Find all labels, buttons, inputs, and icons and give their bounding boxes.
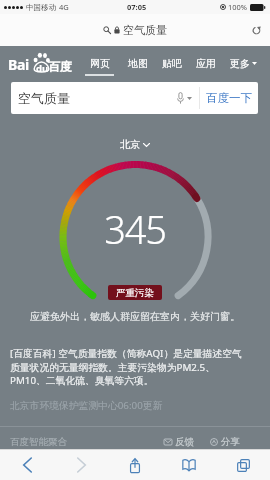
staticText: 中国移动 <box>26 3 56 12</box>
staticText: 百度 <box>48 59 72 74</box>
staticText: 百度一下 <box>206 91 252 105</box>
staticText: 反馈 <box>175 436 194 448</box>
staticText: 应用 <box>196 57 216 70</box>
staticText: 地图 <box>128 57 148 70</box>
staticText: Bai <box>8 55 29 74</box>
button[interactable]: Voice search <box>177 92 192 104</box>
button[interactable]: Baidu <box>8 52 74 76</box>
staticText: 贴吧 <box>162 57 182 70</box>
button[interactable]: Forward <box>54 450 108 480</box>
staticText: 空气质量 <box>123 23 167 37</box>
button[interactable]: 北京 <box>116 134 154 155</box>
staticText: 更多 <box>230 57 250 70</box>
button[interactable]: 地图 <box>121 46 155 82</box>
staticText: 百度智能聚合 <box>10 436 67 448</box>
button[interactable]: 应用 <box>189 46 223 82</box>
button[interactable]: 分享 <box>210 436 240 448</box>
staticText: 北京市环境保护监测中心06:00更新 <box>10 399 163 412</box>
staticText: 应避免外出，敏感人群应留在室内，关好门窗。 <box>0 310 270 323</box>
button[interactable]: 更多 <box>223 46 264 82</box>
button[interactable]: Bookmarks <box>162 450 216 480</box>
staticText: 07:05 <box>127 2 147 12</box>
button[interactable]: 贴吧 <box>155 46 189 82</box>
button[interactable]: 严重污染 <box>108 285 162 300</box>
staticText: 网页 <box>90 57 110 70</box>
staticText: 100% <box>228 2 248 12</box>
button[interactable]: 百度一下 <box>200 82 258 114</box>
button[interactable]: 空气质量 <box>103 23 167 37</box>
button[interactable]: Back <box>0 450 54 480</box>
button[interactable]: 反馈 <box>164 436 194 448</box>
staticText: du <box>36 62 49 75</box>
button[interactable]: Tabs <box>216 450 270 480</box>
staticText: 北京 <box>120 138 140 151</box>
button[interactable]: Share <box>108 450 162 480</box>
staticText: 345 <box>0 203 270 255</box>
button[interactable]: Reload <box>252 26 261 35</box>
button[interactable]: 网页 <box>78 46 121 82</box>
staticText: 严重污染 <box>116 287 154 299</box>
staticText: [百度百科] 空气质量指数（简称AQI）是定量描述空气 质量状况的无量纲指数。主… <box>10 347 242 387</box>
staticText: 分享 <box>221 436 240 448</box>
staticText: 空气质量 <box>18 90 70 106</box>
staticText: 4G <box>59 2 69 12</box>
